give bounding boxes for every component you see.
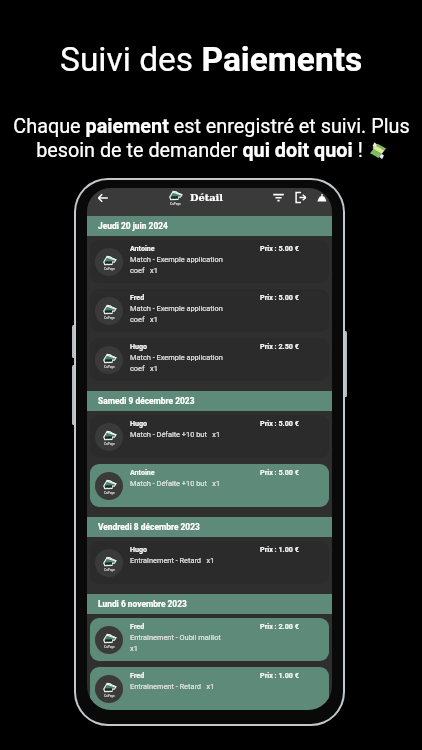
staticText: CaPaye [104,365,115,369]
staticText: CaPaye [104,568,115,572]
staticText: CaPaye [104,491,115,495]
staticText: x1 [130,644,138,653]
staticText: CaPaye [104,267,115,271]
staticText: Match - Exemple application [130,353,223,362]
staticText: Match - Exemple application [130,255,223,264]
staticText: Antoine [130,468,155,476]
button[interactable]: CaPaye [90,338,329,381]
staticText: Fred [130,622,145,630]
button[interactable]: Filter [268,188,288,207]
button[interactable]: CaPaye [90,240,329,283]
button[interactable]: Back [93,188,113,207]
button[interactable]: CaPaye [90,464,329,507]
staticText: CaPaye [104,694,115,698]
staticText: Match - Exemple application [130,304,223,313]
staticText: Hugo [130,419,148,427]
staticText: Fred [130,671,145,679]
button[interactable]: CaPaye [90,618,329,661]
staticText: CaPaye [170,202,181,206]
staticText: Entraînement - Retard x1 [130,682,215,691]
staticText: CaPaye [104,645,115,649]
staticText: coef x1 [130,266,158,275]
button[interactable]: Lundi 6 novembre 2023 [87,594,332,614]
staticText: Chaque paiement est enregistré et suivi.… [13,115,410,138]
staticText: Détail [190,192,224,204]
staticText: Prix : 5.00 € [260,293,299,301]
staticText: Prix : 5.00 € [260,244,299,252]
staticText: Prix : 2.50 € [260,342,299,350]
staticText: Prix : 5.00 € [260,468,299,476]
button[interactable]: CaPaye [90,289,329,332]
button[interactable]: Samedi 9 décembre 2023 [87,391,332,411]
staticText: Jeudi 20 juin 2024 [98,221,168,231]
button[interactable]: Jeudi 20 juin 2024 [87,216,332,236]
staticText: Prix : 1.00 € [260,545,299,553]
staticText: Lundi 6 novembre 2023 [98,599,187,609]
staticText: CaPaye [104,442,115,446]
staticText: coef x1 [130,364,158,373]
button[interactable]: CaPaye [90,667,329,710]
button[interactable]: CaPaye [90,415,329,458]
staticText: Prix : 1.00 € [260,671,299,679]
staticText: Suivi des Paiements [60,40,363,79]
button[interactable]: Logout [290,188,310,207]
staticText: besoin de te demander qui doit quoi ! [36,139,363,162]
button[interactable]: CaPaye [90,541,329,584]
staticText: CaPaye [104,316,115,320]
staticText: Prix : 2.00 € [260,622,299,630]
staticText: Match - Défaite +10 but x1 [130,479,221,488]
staticText: Fred [130,293,145,301]
staticText: Entraînement - Retard x1 [130,556,215,565]
staticText: Match - Défaite +10 but x1 [130,430,221,439]
staticText: Vendredi 8 décembre 2023 [98,522,200,532]
staticText: Hugo [130,545,148,553]
staticText: coef x1 [130,315,158,324]
staticText: Antoine [130,244,155,252]
staticText: Samedi 9 décembre 2023 [98,396,195,406]
staticText: Prix : 5.00 € [260,419,299,427]
staticText: Entraînement - Oubli maillot [130,633,221,642]
staticText: Hugo [130,342,148,350]
button[interactable]: Vendredi 8 décembre 2023 [87,517,332,537]
button[interactable]: Notifications [312,188,332,207]
